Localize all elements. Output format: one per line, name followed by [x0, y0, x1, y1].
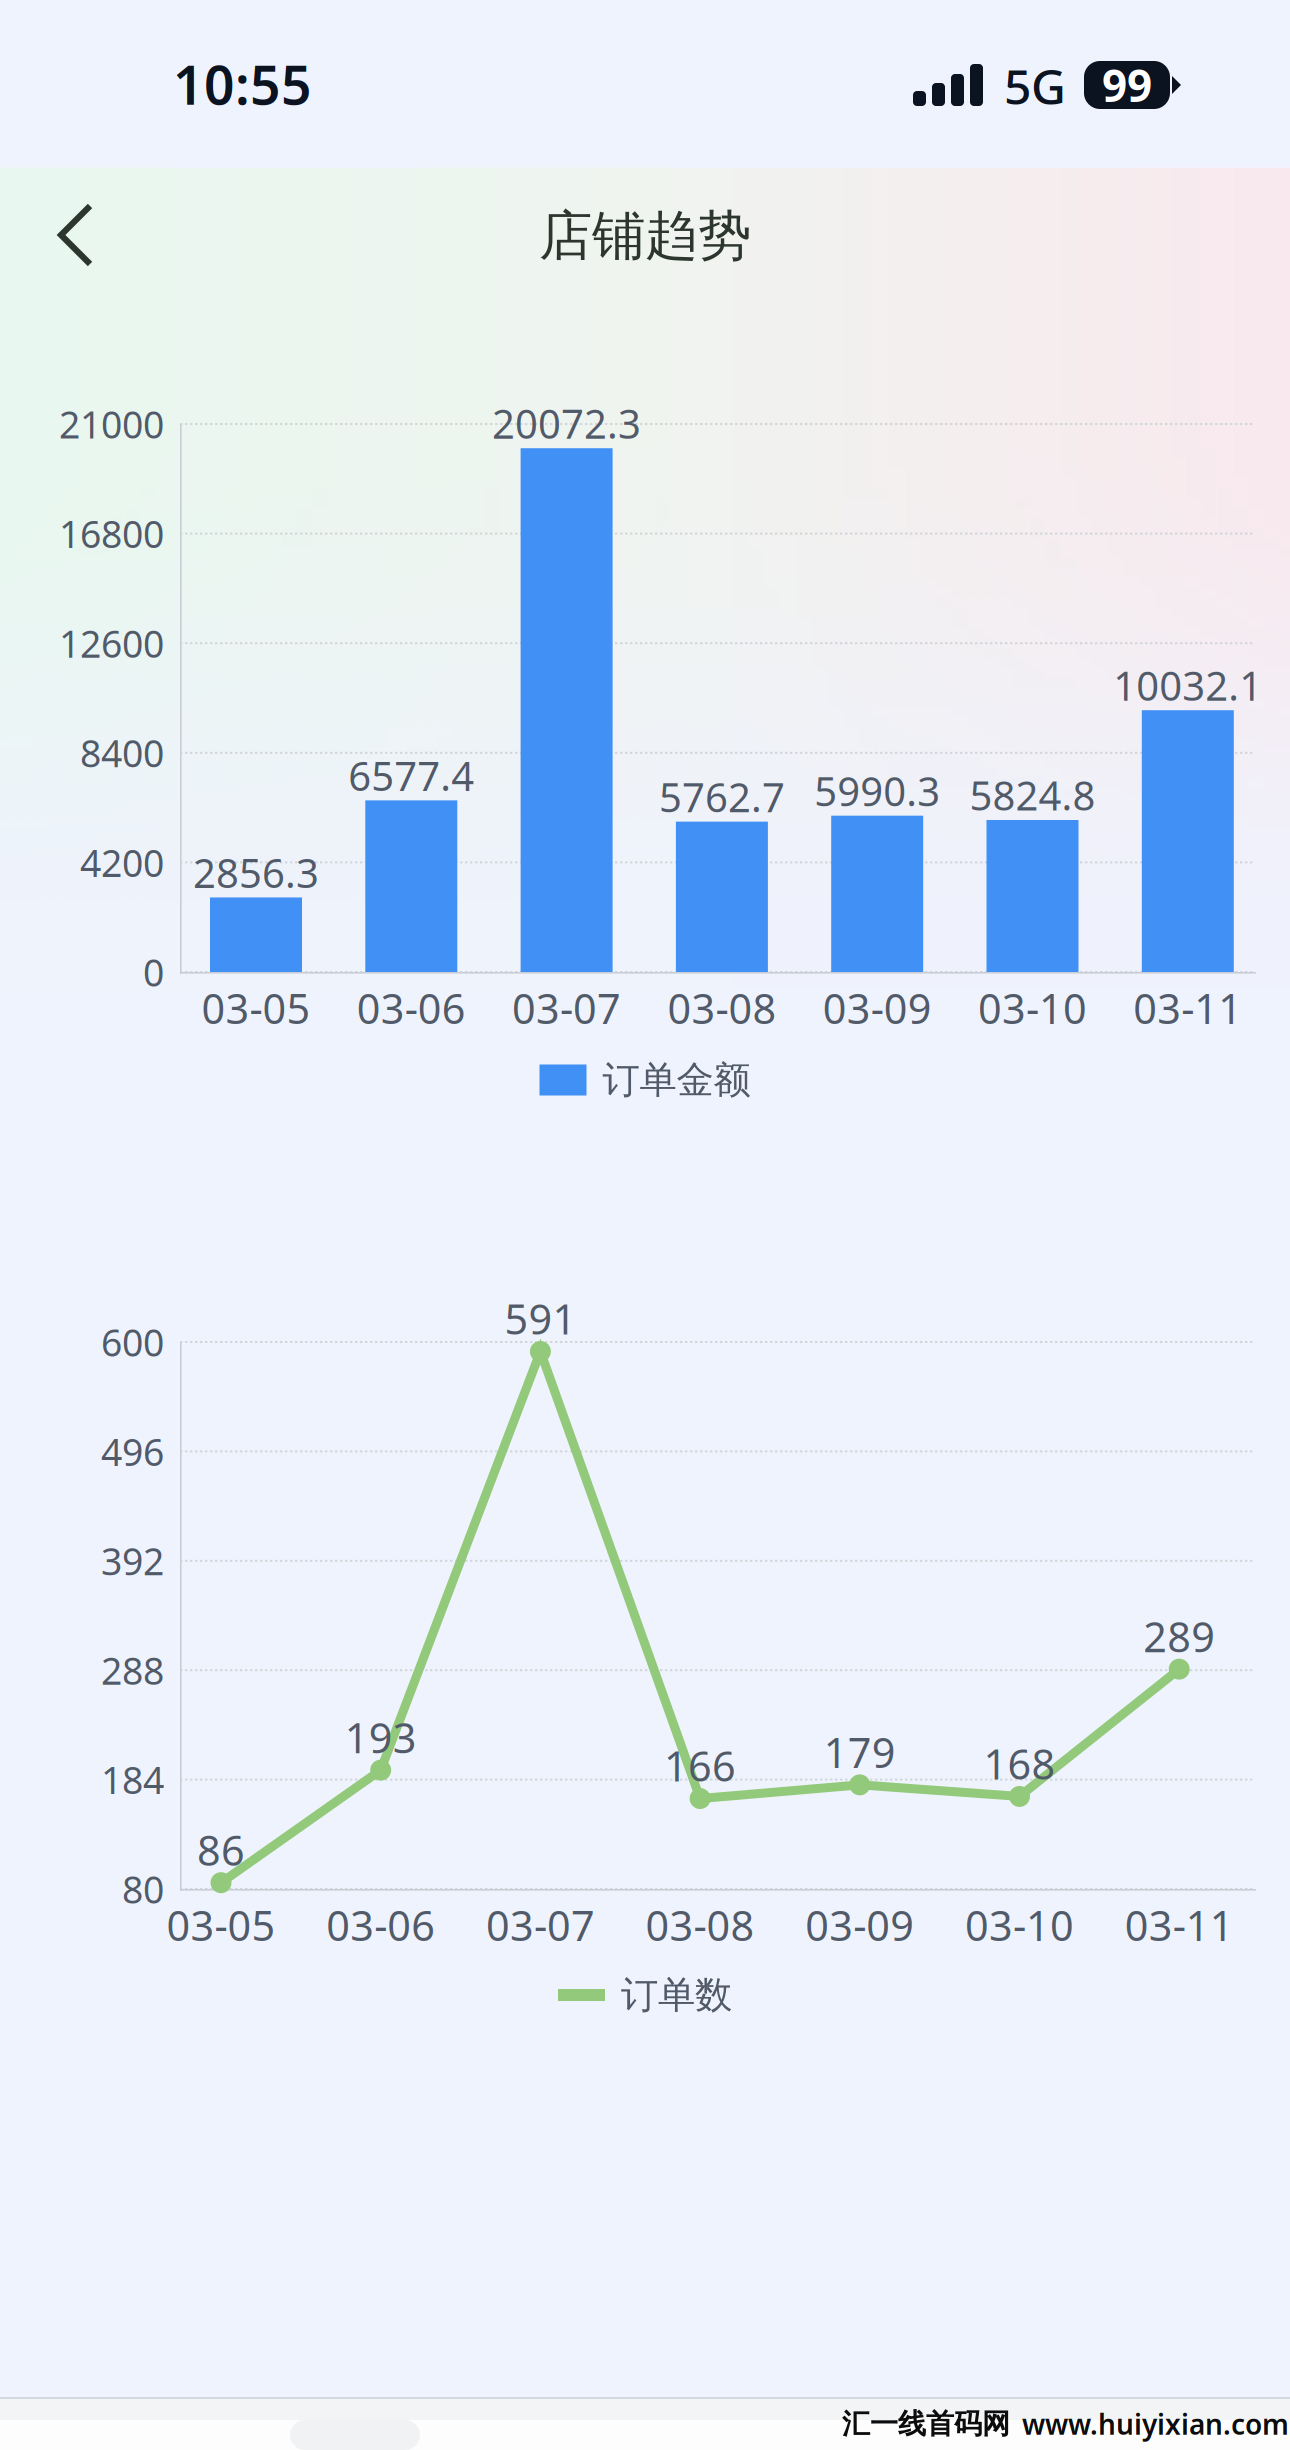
staticText: 03-11	[1125, 1898, 1234, 1952]
staticText: 0	[143, 947, 164, 997]
staticText: 289	[1143, 1609, 1215, 1664]
staticText: 179	[824, 1724, 896, 1779]
staticText: 600	[101, 1317, 164, 1367]
staticText: 10:55	[173, 49, 312, 119]
staticText: 03-10	[965, 1898, 1074, 1952]
staticText: www.huiyixian.com	[1022, 2405, 1289, 2443]
staticText: 5824.8	[969, 768, 1095, 821]
staticText: 20072.3	[492, 397, 641, 450]
staticText: 288	[101, 1645, 164, 1695]
staticText: 03-11	[1133, 981, 1242, 1035]
staticText: 5990.3	[814, 764, 940, 817]
staticText: 5762.7	[659, 770, 785, 823]
staticText: 03-08	[646, 1898, 755, 1952]
staticText: 汇一线首码网	[842, 2407, 1010, 2441]
staticText: 168	[983, 1736, 1055, 1791]
staticText: 80	[122, 1864, 164, 1914]
staticText: 03-05	[201, 981, 310, 1035]
staticText: 03-09	[805, 1898, 914, 1952]
staticText: 03-08	[667, 981, 776, 1035]
staticText: 166	[664, 1738, 736, 1793]
staticText: 591	[504, 1291, 576, 1346]
staticText: 03-06	[326, 1898, 435, 1952]
staticText: 店铺趋势	[539, 203, 751, 269]
staticText: 4200	[80, 838, 164, 887]
staticText: 8400	[80, 728, 164, 778]
staticText: 03-09	[823, 981, 932, 1035]
staticText: 10032.1	[1113, 659, 1262, 712]
staticText: 193	[345, 1710, 417, 1765]
staticText: 392	[101, 1536, 164, 1586]
staticText: 03-06	[357, 981, 466, 1035]
staticText: 184	[101, 1755, 164, 1804]
staticText: 订单金额	[602, 1057, 750, 1103]
staticText: 16800	[59, 509, 164, 558]
staticText: 03-07	[512, 981, 621, 1035]
staticText: 496	[101, 1427, 164, 1476]
staticText: 03-07	[486, 1898, 595, 1952]
staticText: 2856.3	[193, 846, 319, 899]
staticText: 21000	[59, 399, 164, 449]
staticText: 6577.4	[348, 749, 474, 802]
staticText: 订单数	[621, 1972, 732, 2018]
staticText: 03-05	[166, 1898, 275, 1952]
button[interactable]: Back	[28, 183, 148, 293]
staticText: 03-10	[978, 981, 1087, 1035]
staticText: 99	[1102, 56, 1152, 114]
staticText: 86	[197, 1822, 245, 1877]
staticText: 5G	[1004, 54, 1066, 118]
staticText: 12600	[59, 618, 164, 668]
